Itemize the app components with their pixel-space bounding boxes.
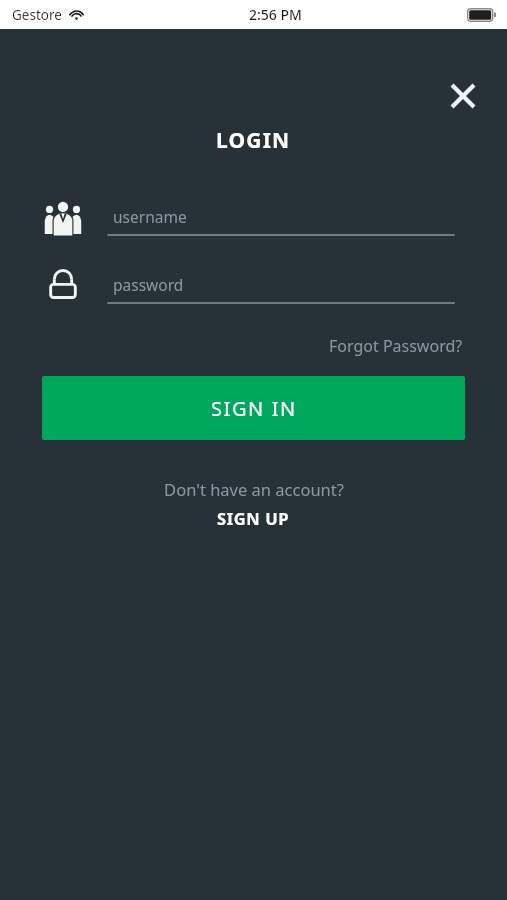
staticText: username	[113, 206, 187, 227]
button[interactable]: Forgot Password?	[327, 330, 465, 362]
staticText: 2:56 PM	[249, 5, 302, 24]
staticText: password	[113, 274, 184, 295]
staticText: LOGIN	[216, 126, 291, 155]
button[interactable]: password	[107, 266, 455, 302]
button[interactable]: Close	[441, 74, 485, 118]
staticText: SIGN UP	[217, 507, 290, 529]
staticText: Gestore	[12, 6, 62, 24]
button[interactable]: SIGN IN	[42, 376, 465, 440]
button[interactable]: SIGN UP	[209, 505, 298, 531]
staticText: Forgot Password?	[329, 335, 463, 357]
button[interactable]: username	[107, 198, 455, 234]
staticText: Don't have an account?	[164, 478, 344, 500]
staticText: SIGN IN	[211, 395, 297, 422]
